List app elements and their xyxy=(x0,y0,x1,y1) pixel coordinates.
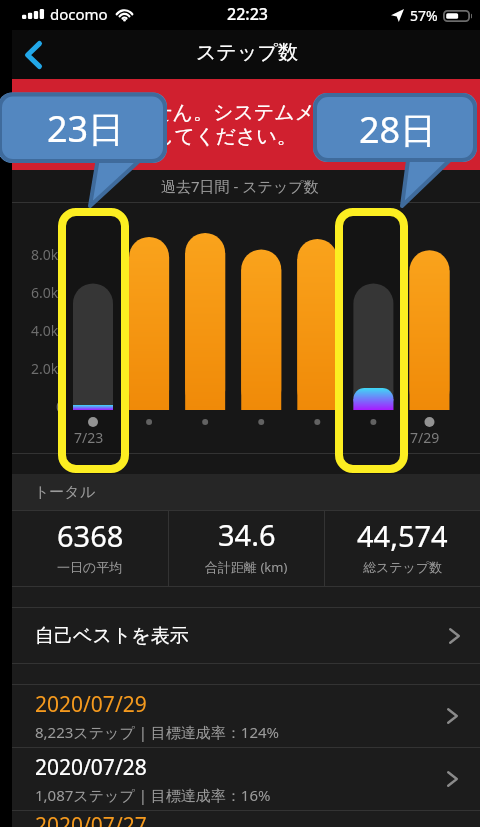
staticText: 6.0k xyxy=(31,283,59,302)
staticText: docomo xyxy=(50,4,108,24)
staticText: 自己ベストを表示 xyxy=(35,624,189,648)
staticText: 23日 xyxy=(47,104,125,153)
staticText: 2020/07/28 xyxy=(35,753,147,782)
staticText: 34.6 xyxy=(218,515,276,554)
staticText: 0 xyxy=(56,397,65,416)
staticText: トータル xyxy=(34,483,96,502)
staticText: 2.0k xyxy=(31,359,59,378)
button[interactable]: Back xyxy=(12,31,54,79)
button[interactable]: 自己ベストを表示 xyxy=(12,608,480,663)
staticText: 44,574 xyxy=(357,516,448,555)
button[interactable]: 2020/07/27 xyxy=(12,811,480,827)
button[interactable]: 2020/07/29 xyxy=(12,685,480,747)
staticText: ステップ数 xyxy=(196,40,298,65)
staticText: 1,087ステップ | 目標達成率：16% xyxy=(35,785,271,805)
staticText: 8,223ステップ | 目標達成率：124% xyxy=(35,722,280,742)
staticText: 4.0k xyxy=(31,321,59,340)
staticText: せん。システムメ xyxy=(152,100,316,125)
staticText: 総ステップ数 xyxy=(363,559,443,575)
staticText: 6368 xyxy=(57,516,124,555)
staticText: 22:23 xyxy=(227,3,268,25)
staticText: 28日 xyxy=(359,105,437,154)
staticText: 57% xyxy=(410,6,438,25)
staticText: 合計距離 (km) xyxy=(205,558,288,576)
staticText: してください。 xyxy=(154,124,297,149)
staticText: 8.0k xyxy=(31,245,59,264)
staticText: 2020/07/27 xyxy=(35,811,147,827)
staticText: 7/23 xyxy=(74,428,104,447)
staticText: 一日の平均 xyxy=(57,559,123,575)
staticText: 7/29 xyxy=(410,428,440,447)
staticText: 過去7日間 - ステップ数 xyxy=(161,176,319,196)
staticText: 2020/07/29 xyxy=(35,690,147,719)
button[interactable]: 2020/07/28 xyxy=(12,748,480,810)
